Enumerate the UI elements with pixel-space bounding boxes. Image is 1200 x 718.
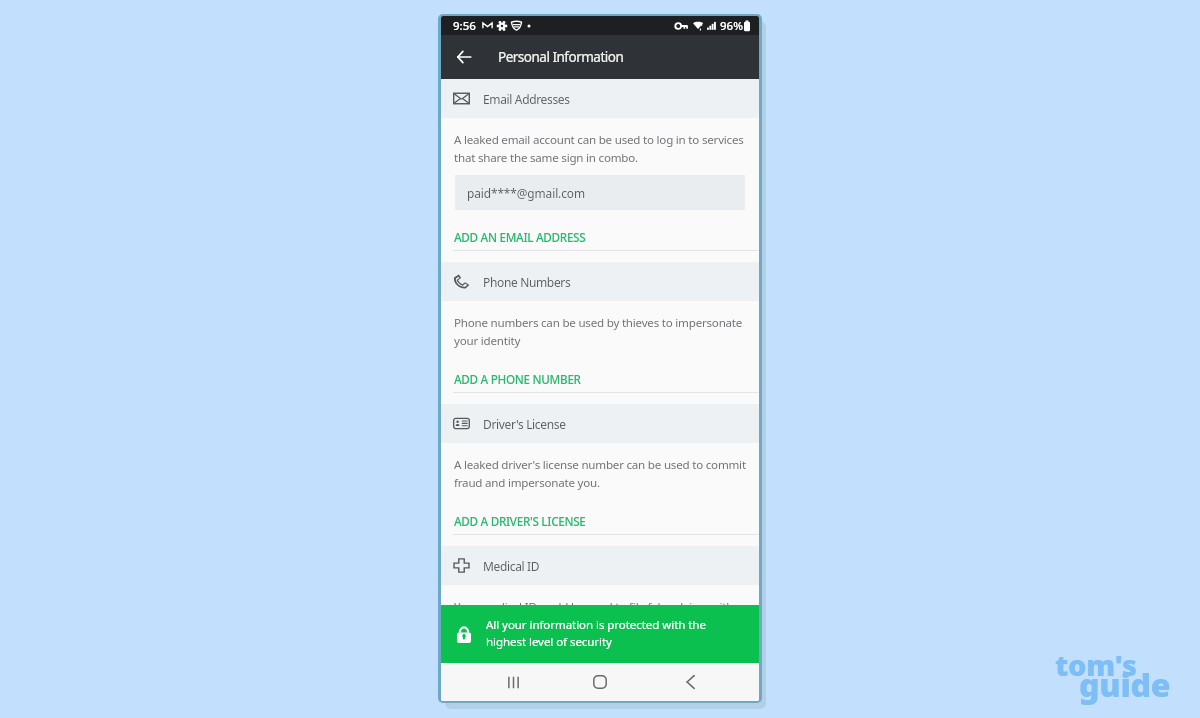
staticText: 96% bbox=[720, 18, 743, 34]
staticText: Phone numbers can be used by thieves to … bbox=[454, 315, 746, 349]
staticText: A leaked driver's license number can be … bbox=[454, 457, 746, 491]
staticText: Medical ID bbox=[483, 558, 540, 574]
staticText: Driver's License bbox=[483, 416, 566, 432]
button[interactable]: ADD AN EMAIL ADDRESS bbox=[441, 229, 759, 245]
staticText: 9:56 bbox=[453, 18, 476, 34]
staticText: tom's bbox=[1055, 645, 1137, 684]
staticText: ADD A PHONE NUMBER bbox=[454, 371, 581, 387]
button[interactable]: Phone Numbers bbox=[441, 262, 759, 301]
button[interactable]: paid****@gmail.com bbox=[455, 175, 745, 210]
staticText: paid****@gmail.com bbox=[467, 185, 585, 201]
button[interactable]: Medical ID bbox=[441, 546, 759, 585]
staticText: All your information is protected with t… bbox=[486, 617, 721, 649]
button[interactable]: Email Addresses bbox=[441, 79, 759, 118]
staticText: Your medical ID could be used to file fa… bbox=[454, 599, 746, 633]
button[interactable]: All your information is protected with t… bbox=[441, 605, 759, 663]
staticText: Email Addresses bbox=[483, 91, 570, 107]
staticText: ADD AN EMAIL ADDRESS bbox=[454, 229, 586, 245]
staticText: Personal Information bbox=[498, 48, 624, 66]
staticText: ADD A DRIVER'S LICENSE bbox=[454, 513, 586, 529]
button[interactable]: Recent apps bbox=[489, 663, 537, 701]
button[interactable]: Back bbox=[441, 35, 486, 79]
button[interactable]: ADD A DRIVER'S LICENSE bbox=[441, 513, 759, 529]
staticText: Phone Numbers bbox=[483, 274, 571, 290]
button[interactable]: Driver's License bbox=[441, 404, 759, 443]
button[interactable]: Back bbox=[666, 663, 714, 701]
button[interactable]: ADD A PHONE NUMBER bbox=[441, 371, 759, 387]
button[interactable]: Home bbox=[576, 663, 624, 701]
staticText: A leaked email account can be used to lo… bbox=[454, 132, 746, 166]
staticText: guide bbox=[1079, 663, 1171, 707]
